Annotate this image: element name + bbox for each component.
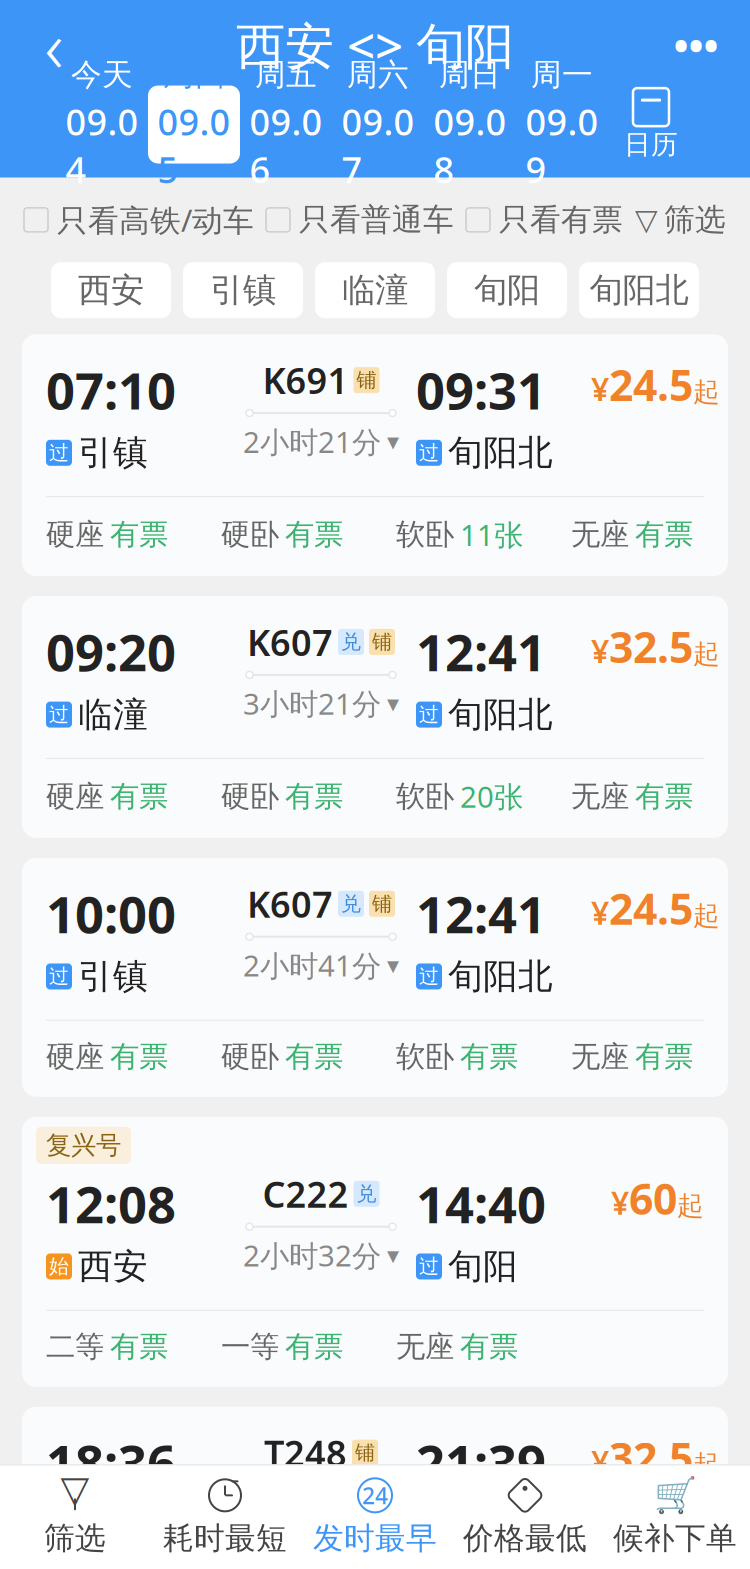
staticText: 有票 — [635, 1039, 693, 1075]
button[interactable]: 24 — [300, 1475, 450, 1557]
staticText: 有票 — [110, 517, 168, 553]
button[interactable]: 09:20 — [22, 596, 728, 838]
staticText: ▾ — [387, 428, 399, 455]
button[interactable]: 只看有票 — [466, 201, 623, 239]
button[interactable]: More options — [664, 13, 728, 77]
button[interactable]: 耗时最短 — [150, 1475, 300, 1557]
staticText: 候补下单 — [613, 1519, 737, 1557]
staticText: 2小时21分 — [243, 422, 381, 461]
staticText: 西安 — [78, 1504, 148, 1547]
staticText: 12:08 — [46, 1170, 176, 1237]
button[interactable]: 07:10 — [22, 334, 728, 576]
staticText: 旬阳 — [448, 1245, 518, 1288]
staticText: 无座 — [571, 517, 629, 553]
staticText: 兑 — [356, 1181, 376, 1206]
staticText: 起 — [693, 1448, 720, 1481]
staticText: 20张 — [460, 777, 523, 816]
staticText: 旬阳北 — [448, 693, 553, 736]
staticText: 有票 — [285, 778, 343, 814]
staticText: 铺 — [372, 630, 392, 654]
button[interactable]: 🛒 — [600, 1475, 750, 1557]
button[interactable]: 西安 — [51, 262, 171, 318]
staticText: 11张 — [460, 515, 523, 554]
staticText: 周一 — [531, 56, 593, 94]
staticText: 24.5 — [609, 356, 693, 413]
staticText: 12:41 — [416, 880, 546, 947]
staticText: 24.5 — [609, 880, 693, 937]
staticText: 西安 <> 旬阳 — [236, 12, 514, 77]
button[interactable]: Back — [22, 13, 86, 77]
staticText: 只看普通车 — [299, 201, 454, 239]
staticText: 无座 — [396, 1329, 454, 1365]
staticText: 复兴号 — [46, 1130, 121, 1161]
staticText: 发时最早 — [313, 1519, 437, 1557]
staticText: 铺 — [372, 891, 392, 916]
button[interactable]: 周一 — [516, 85, 608, 163]
staticText: 软卧 — [396, 1039, 454, 1075]
staticText: 临潼 — [342, 270, 408, 311]
staticText: K607 — [247, 880, 333, 928]
staticText: 过 — [419, 1513, 439, 1538]
button[interactable]: 价格最低 — [450, 1475, 600, 1557]
staticText: 09:31 — [416, 356, 546, 423]
staticText: 起 — [693, 899, 720, 932]
staticText: 旬阳北 — [448, 1504, 553, 1547]
button[interactable]: 只看高铁/动车 — [24, 199, 254, 240]
staticText: ‹ — [44, 0, 63, 92]
staticText: 有票 — [635, 517, 693, 553]
staticText: 西安 — [78, 1245, 148, 1288]
button[interactable]: 只看普通车 — [266, 201, 454, 239]
staticText: 过 — [419, 964, 439, 989]
staticText: 3小时21分 — [243, 684, 381, 723]
staticText: 铺 — [356, 368, 376, 392]
button[interactable]: 周日 — [424, 85, 516, 163]
button[interactable]: 18:36 — [22, 1407, 728, 1569]
staticText: 有票 — [110, 778, 168, 814]
staticText: ▾ — [387, 951, 399, 979]
staticText: ¥ — [591, 891, 609, 934]
staticText: 09.08 — [433, 97, 506, 193]
staticText: 32.5 — [609, 618, 693, 675]
button[interactable]: 旬阳 — [447, 262, 567, 318]
staticText: 有票 — [285, 1039, 343, 1075]
staticText: 过 — [419, 1254, 439, 1279]
staticText: ▾ — [387, 1241, 399, 1269]
staticText: ▾ — [387, 690, 399, 717]
button[interactable]: Calendar — [608, 85, 694, 163]
staticText: 硬卧 — [221, 778, 279, 814]
staticText: 今天 — [71, 56, 133, 94]
staticText: 有票 — [285, 517, 343, 553]
staticText: 过 — [419, 702, 439, 727]
button[interactable]: 引镇 — [183, 262, 303, 318]
staticText: 周日 — [439, 56, 501, 94]
button[interactable]: ▽ — [0, 1475, 150, 1557]
button[interactable]: ▽ — [635, 201, 726, 239]
staticText: 无座 — [571, 778, 629, 814]
staticText: 耗时最短 — [163, 1519, 287, 1557]
button[interactable]: 复兴号 — [22, 1117, 728, 1387]
staticText: 3小时3分 — [251, 1495, 372, 1534]
staticText: 引镇 — [210, 270, 276, 311]
staticText: ¥ — [591, 1440, 609, 1482]
staticText: 二等 — [46, 1329, 104, 1365]
staticText: 起 — [693, 638, 720, 670]
button[interactable]: 周四 — [148, 85, 240, 163]
staticText: 12:41 — [416, 618, 546, 685]
button[interactable]: 旬阳北 — [579, 262, 699, 318]
button[interactable]: 10:00 — [22, 858, 728, 1097]
staticText: 09.06 — [249, 97, 322, 193]
staticText: 筛选 — [44, 1519, 106, 1557]
staticText: 有票 — [110, 1329, 168, 1365]
staticText: 09.04 — [65, 97, 138, 193]
staticText: 旬阳北 — [448, 955, 553, 998]
staticText: 07:10 — [46, 356, 176, 423]
staticText: ▽ — [60, 1468, 89, 1510]
staticText: 引镇 — [78, 431, 148, 474]
button[interactable]: 周五 — [240, 85, 332, 163]
staticText: 周六 — [347, 56, 409, 94]
button[interactable]: 今天 — [56, 85, 148, 163]
button[interactable]: 周六 — [332, 85, 424, 163]
staticText: 硬座 — [46, 778, 104, 814]
staticText: 60 — [629, 1170, 677, 1227]
button[interactable]: 临潼 — [315, 262, 435, 318]
